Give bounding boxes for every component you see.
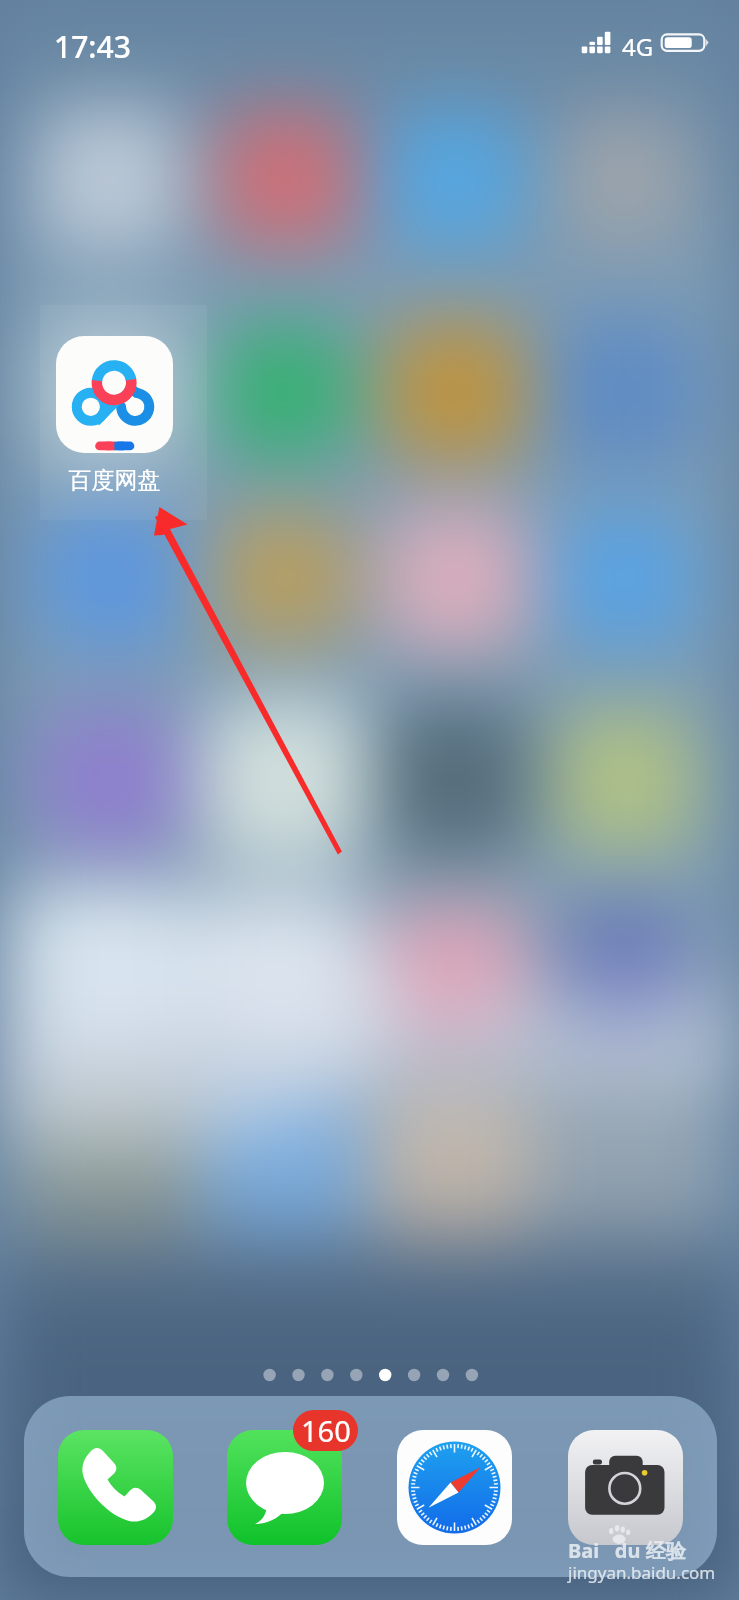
button[interactable]: Camera xyxy=(568,1430,683,1545)
button[interactable]: Safari xyxy=(397,1430,512,1545)
staticText: 4G xyxy=(622,30,654,63)
staticText: 160 xyxy=(301,1411,351,1450)
button[interactable]: 百度网盘 xyxy=(40,305,189,505)
staticText: 17:43 xyxy=(54,26,131,67)
staticText: Bai du 经验 xyxy=(568,1537,686,1564)
staticText: 百度网盘 xyxy=(40,466,189,495)
button[interactable]: Phone xyxy=(58,1430,173,1545)
staticText: jingyan.baidu.com xyxy=(568,1561,716,1584)
button[interactable]: Messages xyxy=(227,1430,342,1545)
